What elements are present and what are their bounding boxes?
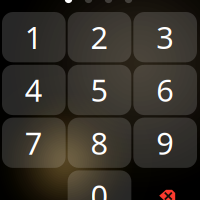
staticText: 6 — [156, 70, 174, 110]
button[interactable]: 9 — [133, 118, 197, 168]
staticText: 5 — [90, 70, 108, 110]
button[interactable]: 5 — [68, 65, 131, 115]
button[interactable]: 4 — [2, 65, 66, 115]
button[interactable]: 7 — [2, 118, 66, 168]
staticText: 7 — [25, 122, 43, 163]
staticText: 3 — [156, 17, 174, 57]
button[interactable]: 3 — [133, 12, 197, 62]
staticText: 0 — [90, 175, 108, 200]
staticText: 4 — [25, 70, 43, 110]
button[interactable]: 1 — [2, 12, 66, 62]
staticText: 8 — [90, 122, 108, 163]
button[interactable]: 6 — [133, 65, 197, 115]
staticText: 9 — [156, 122, 174, 163]
button[interactable]: 2 — [68, 12, 131, 62]
button[interactable]: 0 — [68, 170, 131, 200]
staticText: 2 — [90, 17, 108, 57]
button[interactable]: 8 — [68, 118, 131, 168]
staticText: 1 — [25, 17, 43, 57]
